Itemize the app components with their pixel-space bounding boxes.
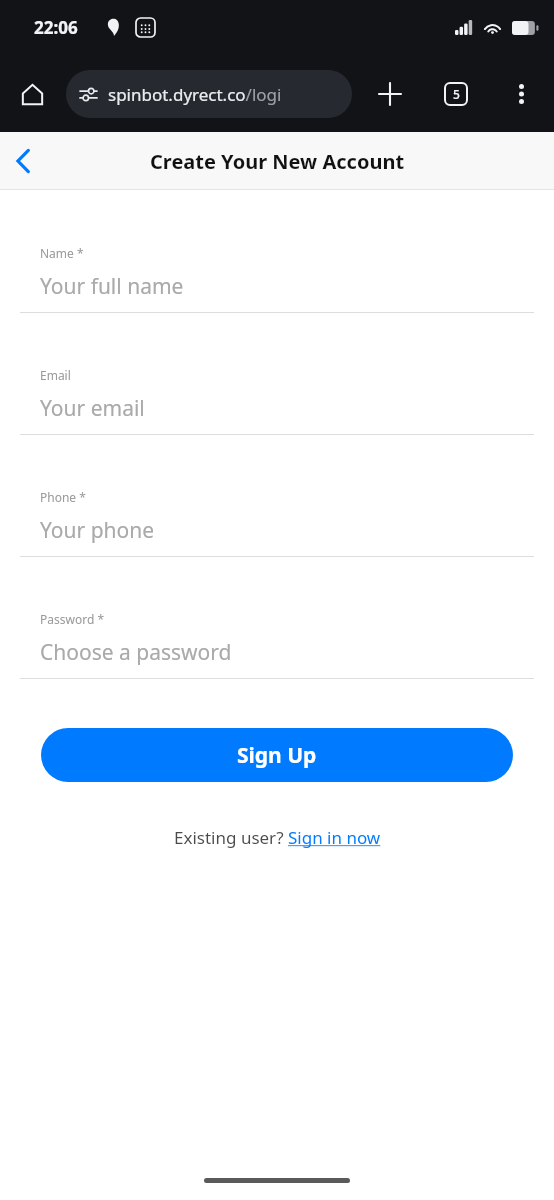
button[interactable]: Sign Up bbox=[41, 728, 513, 782]
button[interactable]: Email bbox=[20, 367, 534, 435]
button[interactable]: More options bbox=[497, 70, 545, 118]
staticText: 5 bbox=[453, 86, 460, 102]
button[interactable]: Sign in now bbox=[288, 826, 381, 849]
button[interactable]: Password * bbox=[20, 611, 534, 679]
staticText: Your full name bbox=[40, 272, 184, 301]
button[interactable]: New tab bbox=[366, 70, 414, 118]
staticText: Your email bbox=[40, 394, 145, 423]
staticText: Phone * bbox=[40, 489, 86, 505]
button[interactable]: Back bbox=[0, 138, 46, 184]
button[interactable]: Tabs bbox=[432, 70, 480, 118]
staticText: Your phone bbox=[40, 516, 155, 545]
staticText: Create Your New Account bbox=[150, 148, 405, 175]
staticText: Sign Up bbox=[237, 741, 317, 770]
staticText: Password * bbox=[40, 611, 105, 627]
button[interactable]: Home bbox=[8, 70, 56, 118]
staticText: Email bbox=[40, 367, 71, 383]
staticText: Choose a password bbox=[40, 638, 232, 667]
staticText: Name * bbox=[40, 245, 84, 261]
button[interactable]: Name * bbox=[20, 245, 534, 313]
staticText: spinbot.dyrect.co/logi bbox=[108, 83, 282, 106]
button[interactable]: Phone * bbox=[20, 489, 534, 557]
staticText: 22:06 bbox=[34, 16, 78, 39]
button[interactable]: spinbot.dyrect.co/logi bbox=[66, 70, 352, 118]
staticText: Existing user? bbox=[174, 826, 288, 849]
staticText: Sign in now bbox=[288, 826, 381, 849]
